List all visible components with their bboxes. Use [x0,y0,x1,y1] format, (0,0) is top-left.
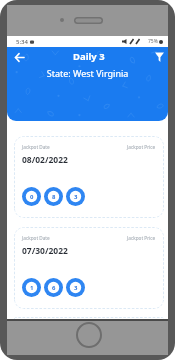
button[interactable]: Jackpot Date [14,136,164,218]
staticText: 0 [30,193,34,201]
button[interactable] [14,317,164,320]
button[interactable]: Back [12,50,26,64]
button[interactable]: Jackpot Date [14,227,164,309]
staticText: 5:34 [16,38,28,46]
staticText: Daily 3 [73,50,105,63]
staticText: Jackpot Price [127,235,156,241]
staticText: 75% [148,38,158,45]
staticText: Jackpot Date [22,235,50,241]
staticText: State: West Virginia [7,67,168,79]
staticText: Jackpot Date [22,144,50,150]
staticText: 3 [74,193,78,201]
button[interactable]: Filter [152,50,166,64]
staticText: Jackpot Price [127,144,156,150]
staticText: 1 [30,284,34,292]
staticText: 07/30/2022 [22,245,68,257]
staticText: 6 [52,284,56,292]
staticText: 3 [74,284,78,292]
staticText: 08/02/2022 [22,154,68,166]
staticText: 8 [52,193,56,201]
